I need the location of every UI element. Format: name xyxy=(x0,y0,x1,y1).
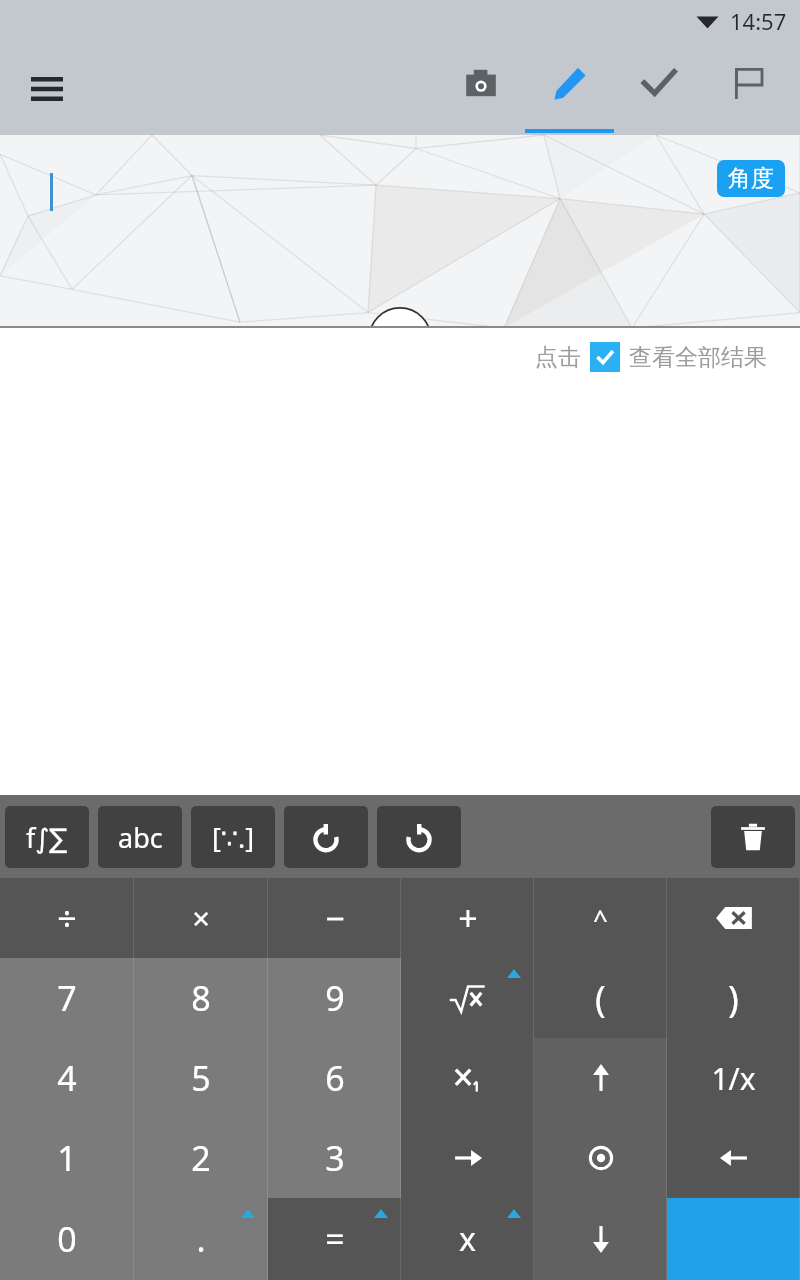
button[interactable]: × xyxy=(134,878,268,958)
button[interactable]: 3 xyxy=(268,1118,401,1198)
staticText: 9 xyxy=(325,975,345,1021)
button[interactable]: Backspace xyxy=(667,878,800,958)
button[interactable]: Delete all xyxy=(711,806,795,868)
button[interactable]: ^ xyxy=(534,878,667,958)
button[interactable]: 6 xyxy=(268,1038,401,1118)
staticText: ) xyxy=(728,974,739,1023)
button[interactable]: 9 xyxy=(268,958,401,1038)
button[interactable]: x xyxy=(401,1198,534,1280)
staticText: 查看全部结果 xyxy=(629,343,767,372)
staticText: 0 xyxy=(57,1216,77,1262)
button[interactable]: ) xyxy=(667,958,800,1038)
staticText: abc xyxy=(118,819,163,856)
button[interactable]: 1/x xyxy=(667,1038,800,1118)
button[interactable]: 1 xyxy=(0,1118,134,1198)
staticText: 3 xyxy=(325,1135,345,1181)
staticText: 1 xyxy=(57,1135,77,1181)
button[interactable]: 7 xyxy=(0,958,134,1038)
button[interactable]: 5 xyxy=(134,1038,268,1118)
button[interactable]: ( xyxy=(534,958,667,1038)
staticText: − xyxy=(325,895,345,941)
staticText: 1/x xyxy=(711,1058,756,1099)
button[interactable]: Right xyxy=(667,1118,800,1198)
staticText: + xyxy=(458,895,478,941)
button[interactable]: Edit xyxy=(525,42,614,135)
staticText: 8 xyxy=(191,975,211,1021)
button[interactable]: 角度 xyxy=(717,160,785,197)
staticText: 7 xyxy=(57,975,77,1021)
staticText: x xyxy=(459,1217,476,1261)
staticText: = xyxy=(325,1216,345,1262)
staticText: . xyxy=(196,1216,206,1262)
staticText: ÷ xyxy=(57,895,77,941)
staticText: 4 xyxy=(57,1055,77,1101)
button[interactable]: [∵.] xyxy=(191,806,275,868)
button[interactable]: Left xyxy=(401,1118,534,1198)
staticText: f∫∑ xyxy=(26,819,68,856)
staticText: 6 xyxy=(325,1055,345,1101)
staticText: × xyxy=(192,897,210,939)
button[interactable]: = xyxy=(268,1198,401,1280)
staticText: ^ xyxy=(593,901,608,936)
button[interactable]: Menu xyxy=(19,61,75,117)
staticText: 2 xyxy=(191,1135,211,1181)
button[interactable]: − xyxy=(268,878,401,958)
button[interactable]: 8 xyxy=(134,958,268,1038)
staticText: 角度 xyxy=(728,164,774,193)
button[interactable]: ÷ xyxy=(0,878,134,958)
button[interactable]: 4 xyxy=(0,1038,134,1118)
button[interactable]: abc xyxy=(98,806,182,868)
button[interactable]: Target xyxy=(534,1118,667,1198)
staticText: ( xyxy=(595,974,606,1023)
button[interactable]: Subscript x xyxy=(401,1038,534,1118)
staticText: [∵.] xyxy=(212,819,255,856)
button[interactable]: Camera xyxy=(436,42,525,135)
button[interactable]: Check xyxy=(614,42,703,135)
button[interactable]: 0 xyxy=(0,1198,134,1280)
button[interactable]: f∫∑ xyxy=(5,806,89,868)
button[interactable]: . xyxy=(134,1198,268,1280)
staticText: 5 xyxy=(191,1055,211,1101)
button[interactable]: Up xyxy=(534,1038,667,1118)
button[interactable]: Flag xyxy=(703,42,792,135)
button[interactable]: Square root xyxy=(401,958,534,1038)
staticText: 14:57 xyxy=(730,6,787,36)
button[interactable]: + xyxy=(401,878,534,958)
staticText: 点击 xyxy=(535,343,581,372)
button[interactable]: 2 xyxy=(134,1118,268,1198)
button[interactable]: Undo xyxy=(284,806,368,868)
button[interactable]: Down xyxy=(534,1198,667,1280)
button[interactable]: Redo xyxy=(377,806,461,868)
button[interactable]: Show all results xyxy=(590,342,620,372)
